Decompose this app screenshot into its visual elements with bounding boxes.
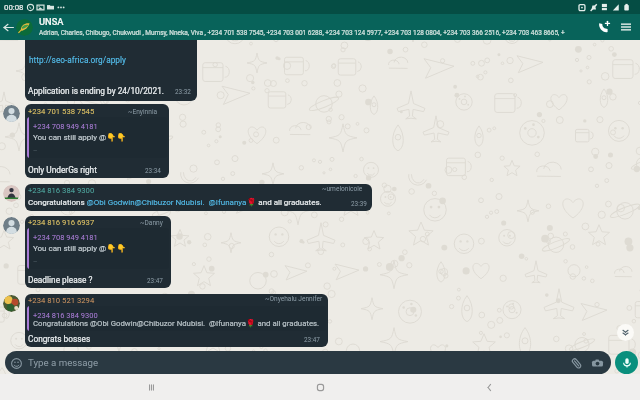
button[interactable]: +234 701 538 7545 <box>25 104 169 178</box>
staticText: Congrats bosses <box>28 334 91 344</box>
staticText: 23:34 <box>145 167 161 175</box>
staticText: +234 810 521 3294 <box>28 296 95 305</box>
staticText: Congratulations @Obi Godwin@Chibuzor Ndu… <box>33 319 320 328</box>
staticText: Only UnderGs right <box>28 165 97 175</box>
staticText: UNSA <box>39 16 64 27</box>
button[interactable]: Group photo <box>16 19 33 36</box>
staticText: +234 708 949 4181 <box>33 122 98 131</box>
staticText: You can still apply @👇👇 <box>33 133 127 142</box>
button[interactable]: More options <box>615 14 637 40</box>
button[interactable]: http://seo-africa.org/apply <box>25 32 197 101</box>
staticText: +234 708 949 4181 <box>33 233 98 242</box>
button[interactable]: Add call <box>593 14 615 40</box>
button[interactable]: +234 816 384 9300 <box>25 184 372 211</box>
button[interactable]: Emoji <box>5 351 611 374</box>
button[interactable]: Recent apps <box>133 374 169 400</box>
button[interactable]: +234 810 521 3294 <box>25 294 328 347</box>
button[interactable]: Attach <box>568 355 584 371</box>
staticText: 23:47 <box>304 336 320 344</box>
staticText: — <box>33 147 38 153</box>
staticText: +234 701 538 7545 <box>28 107 95 116</box>
staticText: ~Danny <box>140 219 163 227</box>
staticText: 23:47 <box>147 277 163 285</box>
staticText: Application is ending by 24/10/2021. <box>28 86 164 96</box>
staticText: 23:39 <box>351 200 367 208</box>
button[interactable]: Back <box>0 14 16 40</box>
staticText: You can still apply @👇👇 <box>33 244 127 253</box>
staticText: Deadline please ? <box>28 275 93 285</box>
button[interactable]: Record voice message <box>615 351 638 374</box>
button[interactable]: Emoji <box>8 355 24 371</box>
button[interactable]: +234 816 916 6937 <box>25 216 171 288</box>
staticText: +234 816 916 6937 <box>28 218 95 227</box>
button[interactable]: Back <box>471 374 507 400</box>
staticText: ~umelonicole <box>322 185 363 193</box>
staticText: Adrian, Charles, Chibugo, Chukwudi , Mum… <box>39 29 565 37</box>
staticText: Congratulations @Obi Godwin@Chibuzor Ndu… <box>28 198 322 207</box>
staticText: 23:32 <box>175 88 191 96</box>
staticText: http://seo-africa.org/apply <box>29 55 126 65</box>
staticText: 00:08 <box>4 3 24 12</box>
staticText: +234 816 384 9300 <box>28 186 95 195</box>
staticText: Type a message <box>28 357 99 368</box>
button[interactable]: Home <box>302 374 338 400</box>
staticText: +234 816 384 9300 <box>33 311 98 320</box>
staticText: — <box>33 258 38 264</box>
staticText: ~Enyinnia <box>128 108 158 116</box>
button[interactable]: Scroll to bottom <box>617 324 634 341</box>
button[interactable]: Camera <box>589 355 605 371</box>
staticText: ~Onyehalu Jennifer <box>265 295 323 303</box>
